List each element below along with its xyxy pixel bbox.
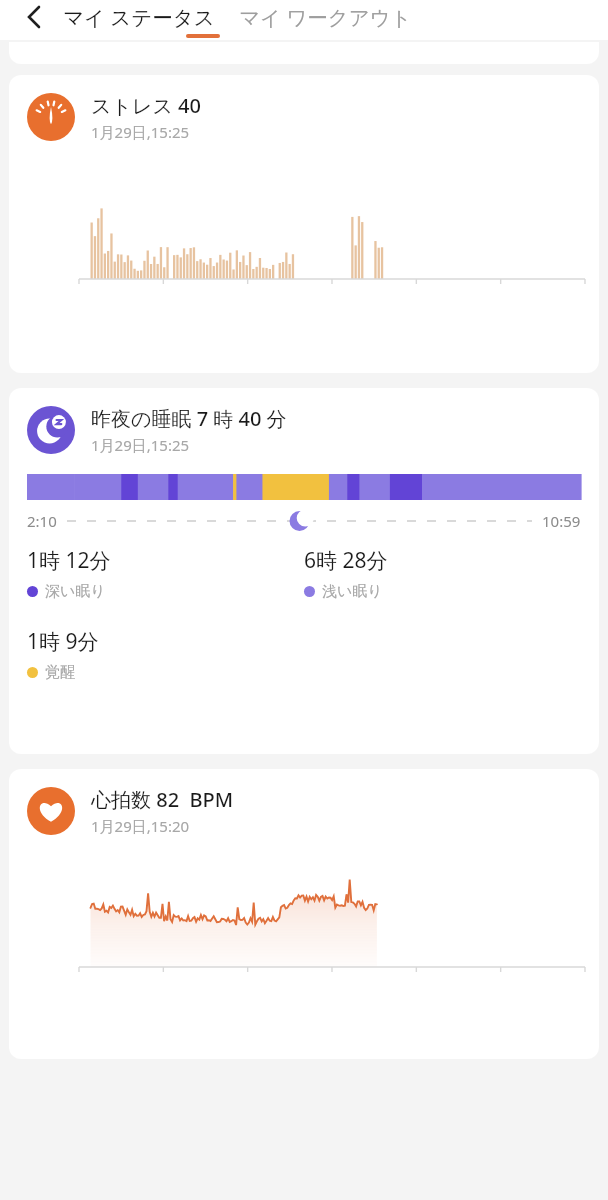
staticText: マイ ステータス	[63, 3, 215, 31]
staticText: 1時 12分	[27, 546, 111, 575]
button[interactable]: マイ ステータス	[59, 3, 219, 31]
staticText: 覚醒	[45, 663, 75, 682]
staticText: ストレス 40	[91, 92, 201, 119]
button[interactable]: 昨夜の睡眠 7 時 40 分	[9, 388, 599, 754]
staticText: 心拍数 82 BPM	[91, 786, 234, 813]
staticText: 1月29日,15:20	[91, 816, 190, 836]
staticText: マイ ワークアウト	[239, 3, 412, 31]
staticText: 2:10	[27, 511, 57, 531]
button[interactable]: ストレス 40	[9, 75, 599, 373]
staticText: 1月29日,15:25	[91, 435, 190, 455]
staticText: 6時 28分	[304, 546, 388, 575]
button[interactable]: マイ ワークアウト	[235, 3, 416, 31]
button[interactable]: Back	[10, 0, 58, 34]
staticText: 浅い眠り	[322, 582, 383, 601]
staticText: 昨夜の睡眠 7 時 40 分	[91, 405, 287, 432]
staticText: 1時 9分	[27, 627, 99, 656]
staticText: 深い眠り	[45, 582, 106, 601]
staticText: 10:59	[542, 511, 581, 531]
button[interactable]: 心拍数 82 BPM	[9, 769, 599, 1059]
staticText: 1月29日,15:25	[91, 122, 190, 142]
